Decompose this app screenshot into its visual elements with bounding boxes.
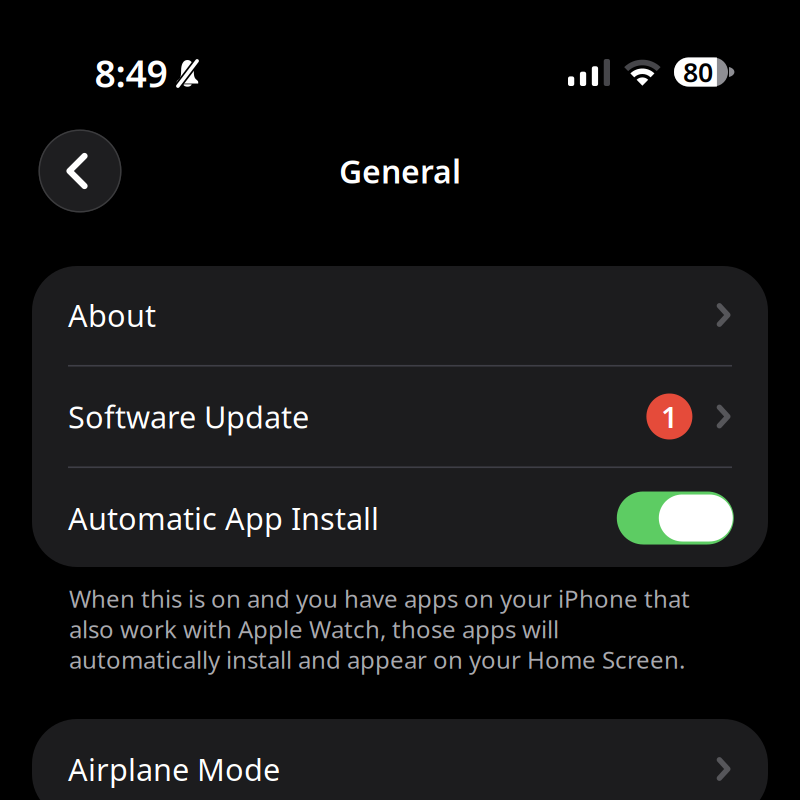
staticText: About — [68, 295, 156, 335]
staticText: Software Update — [68, 396, 309, 437]
button[interactable]: Back — [38, 129, 121, 212]
button[interactable]: Software Update — [32, 366, 768, 466]
button[interactable]: Automatic App Install — [32, 468, 768, 568]
staticText: also work with Apple Watch, those apps w… — [69, 613, 559, 645]
staticText: General — [339, 150, 461, 192]
button[interactable]: Airplane Mode — [32, 719, 768, 800]
staticText: 80 — [683, 54, 713, 90]
staticText: Automatic App Install — [68, 498, 379, 538]
button[interactable]: About — [32, 265, 768, 365]
staticText: 8:49 — [94, 48, 167, 98]
staticText: automatically install and appear on your… — [69, 644, 685, 675]
staticText: Airplane Mode — [68, 749, 280, 789]
staticText: When this is on and you have apps on you… — [69, 583, 690, 614]
staticText: 1 — [661, 397, 678, 436]
